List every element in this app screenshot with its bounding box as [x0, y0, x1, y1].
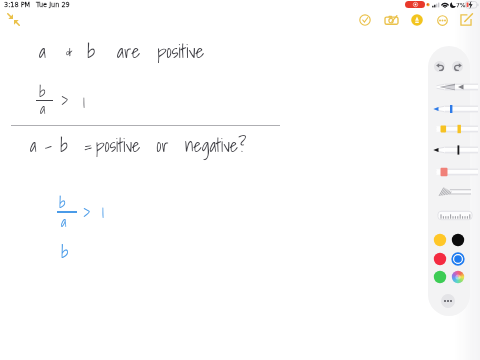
staticText: a [40, 96, 46, 120]
button[interactable]: Colour swatch [432, 232, 448, 248]
button[interactable]: Fountain pen [432, 78, 478, 96]
staticText: positive or negative? [96, 131, 247, 160]
staticText: b [61, 238, 69, 265]
button[interactable]: Redo [452, 61, 463, 72]
button[interactable]: Pencil [432, 141, 478, 159]
button[interactable]: New note [460, 14, 472, 26]
staticText: a - b = [30, 131, 92, 160]
staticText: b [39, 79, 46, 103]
button[interactable]: More options [437, 15, 448, 26]
button[interactable]: Colour swatch [432, 269, 448, 285]
staticText: > [83, 199, 91, 226]
staticText: are positive [117, 36, 205, 67]
button[interactable]: More tools [441, 294, 455, 308]
button[interactable]: Pen [432, 100, 478, 118]
button[interactable]: Insert photo [384, 13, 399, 28]
button[interactable]: Ruler [437, 208, 472, 223]
staticText: a [39, 36, 46, 67]
button[interactable]: Highlighter [432, 120, 478, 138]
staticText: a [61, 209, 67, 233]
staticText: Tue Jun 29 [36, 1, 70, 9]
staticText: 1 [102, 198, 104, 225]
staticText: 3:18 PM [4, 1, 31, 9]
button[interactable]: Lasso select [437, 185, 471, 199]
button[interactable]: Undo [434, 61, 445, 72]
staticText: > [61, 87, 69, 114]
button[interactable]: Screen recording [405, 1, 425, 8]
staticText: b [59, 190, 66, 214]
staticText: b [87, 36, 96, 67]
button[interactable]: Colour swatch [450, 251, 466, 267]
button[interactable]: Done [359, 14, 371, 26]
button[interactable]: Eraser [432, 163, 478, 181]
staticText: 7% [456, 1, 466, 8]
button[interactable]: Markup [411, 14, 423, 26]
button[interactable]: Colour swatch [450, 232, 466, 248]
staticText: 1 [83, 88, 85, 115]
button[interactable]: Expand note [7, 13, 20, 26]
button[interactable]: Colour swatch [432, 251, 448, 267]
button[interactable]: Colour swatch [450, 269, 466, 285]
staticText: & [66, 36, 73, 67]
